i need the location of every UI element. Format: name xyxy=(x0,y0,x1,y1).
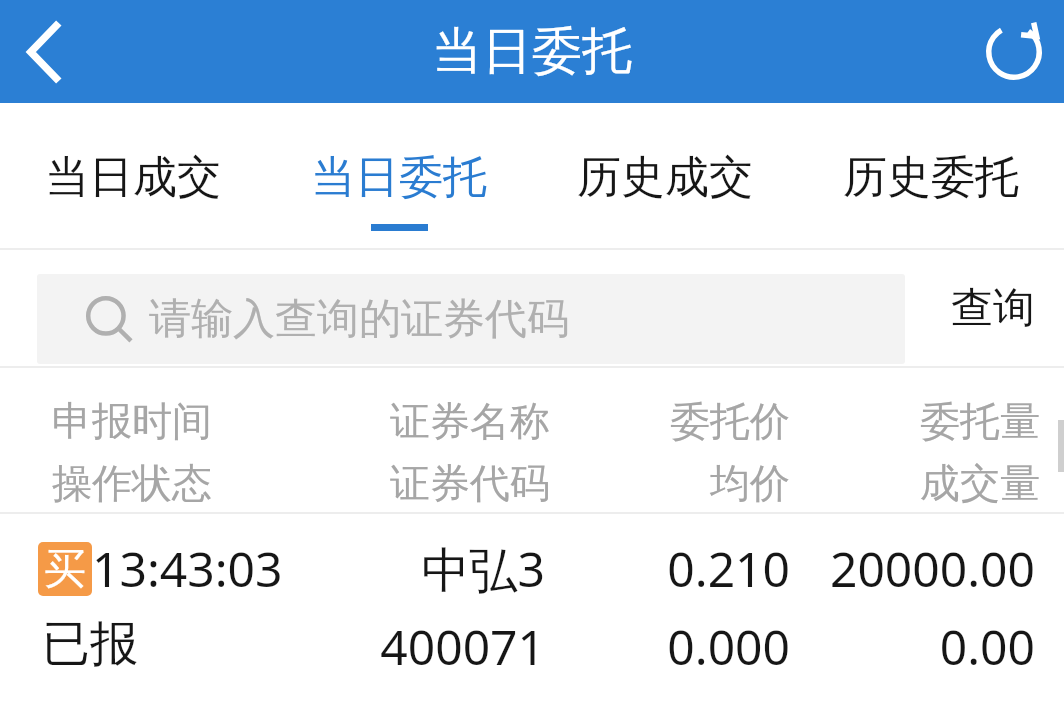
button[interactable]: Back xyxy=(0,0,92,103)
staticText: 买 xyxy=(44,543,86,596)
staticText: 已报 xyxy=(42,614,138,674)
staticText: 委托量 xyxy=(0,396,1040,446)
staticText: 当日成交 xyxy=(45,150,221,205)
staticText: 0.00 xyxy=(0,614,1035,679)
button[interactable]: 当日委托 xyxy=(266,103,532,250)
staticText: 0.210 xyxy=(0,536,790,601)
staticText: 操作状态 xyxy=(52,458,212,508)
staticText: 查询 xyxy=(951,282,1035,335)
staticText: 成交量 xyxy=(0,458,1040,508)
button[interactable]: 当日成交 xyxy=(0,103,266,250)
staticText: 证券代码 xyxy=(390,458,550,508)
button[interactable]: 买 xyxy=(0,514,1064,674)
button[interactable]: 请输入查询的证券代码 xyxy=(37,274,905,364)
staticText: 0.000 xyxy=(0,614,790,679)
staticText: 400071 xyxy=(0,614,545,679)
staticText: 20000.00 xyxy=(0,536,1035,601)
button[interactable]: 查询 xyxy=(922,250,1064,366)
button[interactable]: 历史成交 xyxy=(532,103,798,250)
staticText: 历史成交 xyxy=(577,150,753,205)
staticText: 均价 xyxy=(0,458,790,508)
button[interactable]: 历史委托 xyxy=(798,103,1064,250)
staticText: 证券名称 xyxy=(390,396,550,446)
staticText: 当日委托 xyxy=(311,150,487,205)
staticText: 当日委托 xyxy=(432,20,632,83)
staticText: 申报时间 xyxy=(52,396,212,446)
staticText: 13:43:03 xyxy=(92,536,283,601)
staticText: 请输入查询的证券代码 xyxy=(149,293,569,346)
staticText: 历史委托 xyxy=(843,150,1019,205)
staticText: 中弘3 xyxy=(0,536,545,602)
button[interactable]: Refresh xyxy=(964,0,1064,103)
staticText: 委托价 xyxy=(0,396,790,446)
